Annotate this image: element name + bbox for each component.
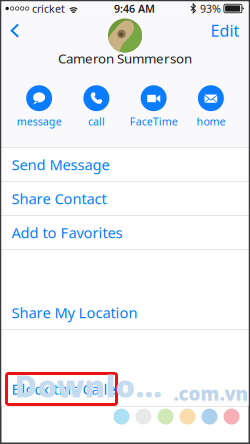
button[interactable]: Add to Favorites — [1, 216, 248, 249]
button[interactable]: Send Message — [1, 148, 248, 181]
staticText: Cameron Summerson — [58, 49, 192, 67]
button[interactable]: message — [10, 85, 68, 128]
staticText: Send Message — [11, 155, 109, 174]
staticText: 93% — [200, 1, 221, 16]
button[interactable]: call — [68, 85, 125, 128]
staticText: Add to Favorites — [11, 223, 122, 242]
button[interactable]: Share Contact — [1, 182, 248, 215]
staticText: Edit — [210, 20, 239, 41]
staticText: call — [88, 114, 105, 128]
staticText: Download — [14, 365, 173, 406]
staticText: Share Contact — [11, 189, 106, 208]
staticText: cricket — [29, 1, 65, 16]
button[interactable]: FaceTime — [125, 85, 182, 128]
staticText: 9:46 AM — [114, 1, 155, 16]
staticText: message — [17, 114, 62, 128]
button[interactable]: Back — [1, 15, 34, 45]
staticText: Block this Caller — [11, 379, 121, 399]
staticText: FaceTime — [130, 114, 178, 128]
button[interactable]: Block this Caller — [1, 372, 248, 406]
button[interactable]: Share My Location — [1, 296, 248, 329]
staticText: Share My Location — [11, 303, 137, 322]
staticText: .com.vn — [173, 381, 248, 406]
staticText: home — [196, 114, 225, 128]
button[interactable]: Edit — [196, 15, 248, 45]
button[interactable]: home — [182, 85, 239, 128]
